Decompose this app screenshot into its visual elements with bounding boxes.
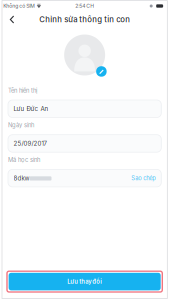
staticText: Sao chép <box>131 175 156 182</box>
staticText: Lưu Đức An <box>13 105 48 112</box>
button[interactable]: Lưu thay đổi <box>9 273 161 290</box>
staticText: 8dkw <box>13 174 29 182</box>
staticText: Mã học sinh <box>8 156 40 163</box>
button[interactable]: Sao chép <box>125 172 156 185</box>
staticText: Lưu thay đổi <box>67 278 102 285</box>
button[interactable]: Back <box>5 11 19 27</box>
button[interactable]: Change profile photo <box>63 33 106 76</box>
staticText: Không có SIM <box>3 3 35 9</box>
staticText: 25/09/2017 <box>13 140 46 147</box>
staticText: Ngày sinh <box>8 122 34 129</box>
staticText: Chỉnh sửa thông tin con <box>39 15 130 24</box>
staticText: Tên hiển thị <box>8 87 37 94</box>
staticText: 2:54 CH <box>75 3 94 9</box>
